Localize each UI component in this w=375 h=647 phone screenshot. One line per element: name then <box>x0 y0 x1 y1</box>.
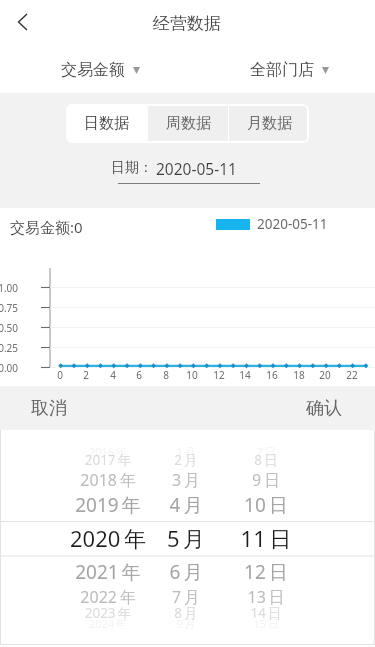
staticText: 确认 <box>306 397 342 420</box>
staticText: 交易金额:0 <box>10 217 83 237</box>
staticText: 10 <box>182 368 202 382</box>
staticText: 0.25 <box>0 341 18 355</box>
staticText: 7 日 <box>216 444 316 459</box>
staticText: 周数据 <box>166 114 211 133</box>
staticText: 2017 年 <box>58 451 158 469</box>
button[interactable]: 日数据 <box>66 104 147 143</box>
staticText: 2016 年 <box>58 444 158 459</box>
staticText: 2 <box>76 368 96 382</box>
staticText: 9 月 <box>136 616 236 631</box>
button[interactable]: 日期： <box>108 156 266 188</box>
staticText: 2023 年 <box>58 604 158 622</box>
staticText: 2020 年 <box>58 523 158 553</box>
staticText: 6 <box>129 368 149 382</box>
button[interactable]: 确认 <box>284 386 364 430</box>
staticText: 交易金额 <box>61 60 125 80</box>
staticText: 8 日 <box>216 451 316 469</box>
staticText: 7 月 <box>136 586 236 608</box>
staticText: 10 日 <box>216 492 316 518</box>
button[interactable]: 交易金额 <box>51 57 150 83</box>
staticText: 5 月 <box>136 523 236 553</box>
staticText: 0.75 <box>0 301 18 315</box>
staticText: 月数据 <box>247 114 292 133</box>
staticText: 13 日 <box>216 586 316 608</box>
staticText: 0.00 <box>0 361 18 375</box>
staticText: 2 月 <box>136 451 236 469</box>
staticText: 日数据 <box>84 114 129 133</box>
staticText: 11 日 <box>216 523 316 553</box>
staticText: 取消 <box>31 397 67 420</box>
staticText: 15 日 <box>216 616 316 631</box>
staticText: 1 月 <box>136 444 236 459</box>
button[interactable]: 月数据 <box>229 104 309 143</box>
staticText: 14 日 <box>216 604 316 622</box>
staticText: 6 月 <box>136 559 236 585</box>
staticText: 2020-05-11 <box>257 215 328 233</box>
staticText: 经营数据 <box>153 13 221 34</box>
staticText: 12 日 <box>216 559 316 585</box>
staticText: 1.00 <box>0 281 18 295</box>
staticText: 2022 年 <box>58 586 158 608</box>
staticText: 2019 年 <box>58 492 158 518</box>
staticText: 2024 年 <box>58 616 158 631</box>
button[interactable]: 全部门店 <box>240 57 339 83</box>
staticText: 全部门店 <box>250 60 314 80</box>
staticText: 14 <box>235 368 255 382</box>
staticText: 日期： <box>111 159 153 177</box>
button[interactable]: 周数据 <box>148 104 228 143</box>
button[interactable]: 取消 <box>9 386 89 430</box>
staticText: 3 月 <box>136 469 236 491</box>
staticText: 16 <box>262 368 282 382</box>
staticText: 22 <box>342 368 362 382</box>
staticText: 8 月 <box>136 604 236 622</box>
staticText: 2018 年 <box>58 469 158 491</box>
staticText: 2021 年 <box>58 559 158 585</box>
staticText: 20 <box>315 368 335 382</box>
staticText: 8 <box>156 368 176 382</box>
button[interactable]: Back <box>0 0 44 44</box>
staticText: 4 <box>103 368 123 382</box>
staticText: 18 <box>289 368 309 382</box>
staticText: 0.50 <box>0 321 18 335</box>
staticText: 2020-05-11 <box>156 158 237 179</box>
staticText: 12 <box>209 368 229 382</box>
staticText: 0 <box>50 368 70 382</box>
staticText: 4 月 <box>136 492 236 518</box>
staticText: 9 日 <box>216 469 316 491</box>
